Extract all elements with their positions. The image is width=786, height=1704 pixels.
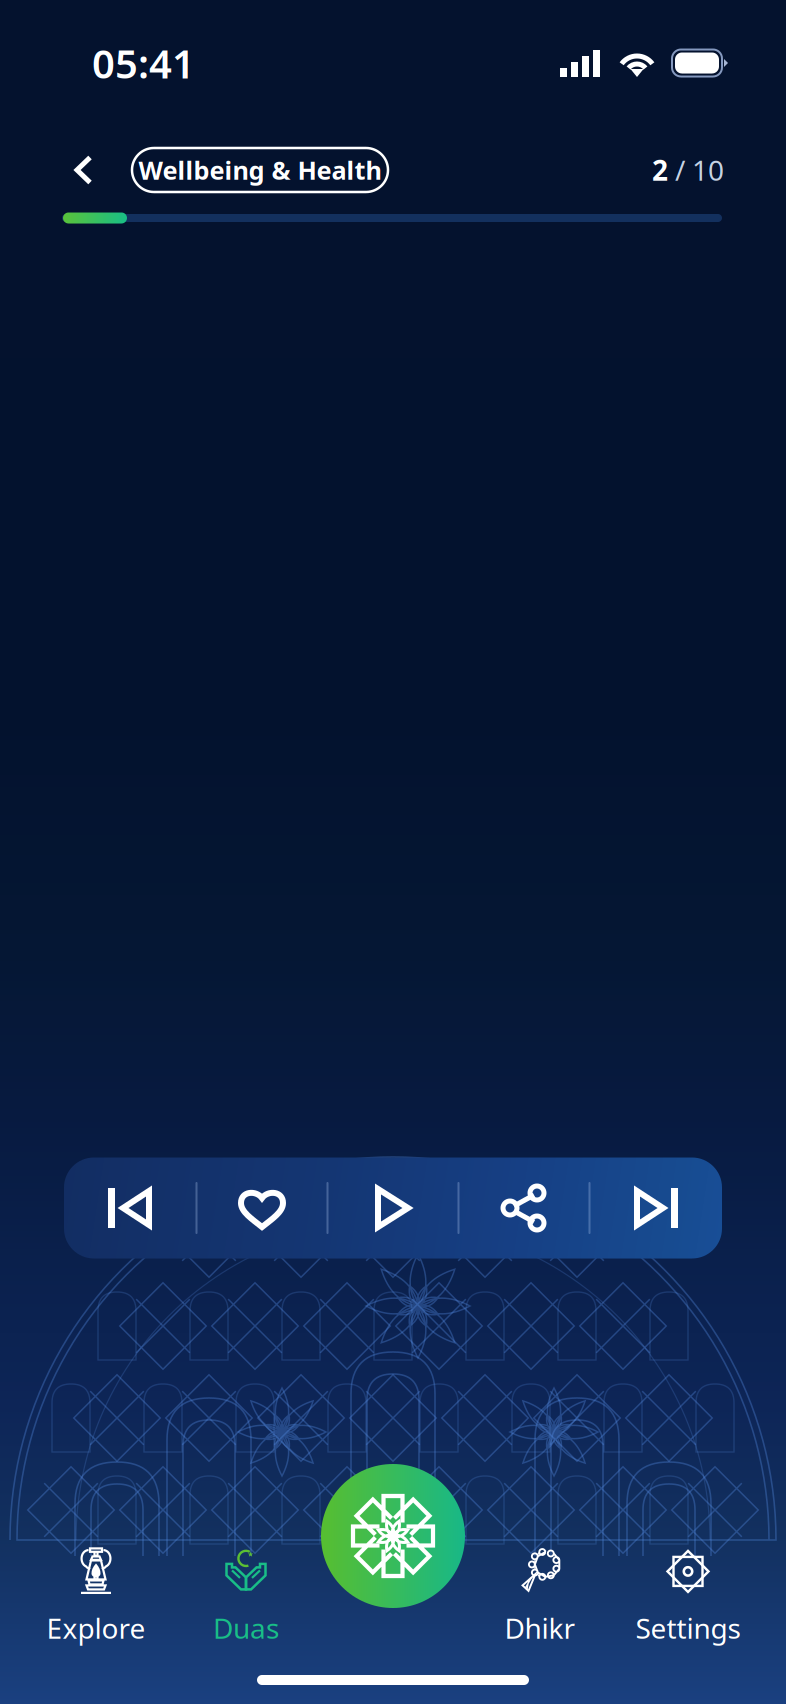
button[interactable]: Favourite [197, 1157, 326, 1258]
button[interactable]: Dhikr [465, 1539, 615, 1649]
staticText: Settings [635, 1609, 740, 1647]
button[interactable]: Wellbeing & Health [132, 148, 388, 192]
staticText: 10 [692, 151, 724, 189]
button[interactable]: Explore [21, 1539, 171, 1649]
button[interactable]: Share [459, 1157, 588, 1258]
staticText: Duas [213, 1609, 279, 1647]
button[interactable]: Play [328, 1157, 457, 1258]
button[interactable]: Previous [64, 1157, 195, 1258]
staticText: Wellbeing & Health [138, 153, 381, 187]
staticText: Dhikr [504, 1609, 575, 1647]
staticText: 2 [652, 151, 668, 189]
button[interactable]: Back [58, 142, 110, 198]
button[interactable]: Home [321, 1464, 465, 1608]
button[interactable]: Next [590, 1157, 721, 1258]
staticText: Explore [46, 1609, 145, 1647]
staticText: 05:41 [92, 36, 195, 89]
button[interactable]: Duas [171, 1539, 321, 1649]
button[interactable]: Settings [613, 1539, 763, 1649]
staticText: / [668, 151, 692, 189]
